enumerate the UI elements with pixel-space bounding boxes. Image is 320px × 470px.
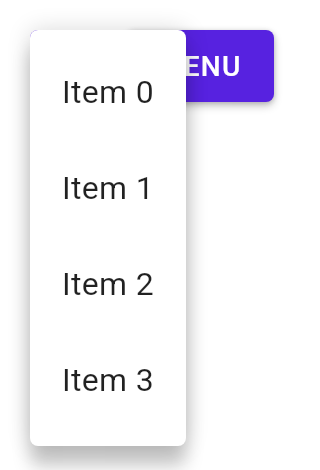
staticText: Item 0	[62, 73, 154, 111]
staticText: Item 2	[62, 265, 154, 303]
staticText: MENU	[158, 50, 242, 83]
button[interactable]: MENU	[126, 30, 274, 102]
staticText: Item 1	[62, 169, 154, 207]
button[interactable]: Item 1	[30, 142, 186, 238]
button[interactable]: Item 0	[30, 46, 186, 142]
button[interactable]: Item 2	[30, 238, 186, 334]
staticText: Item 3	[62, 361, 154, 399]
button[interactable]: Item 3	[30, 334, 186, 430]
